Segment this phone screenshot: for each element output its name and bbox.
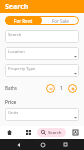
- button[interactable]: Decrease baths: [46, 84, 55, 93]
- staticText: Baths: [5, 85, 18, 91]
- staticText: Location: [8, 49, 25, 55]
- button[interactable]: For Rent: [5, 16, 42, 25]
- button[interactable]: For Sale: [42, 16, 79, 25]
- button[interactable]: Recents: [60, 139, 71, 150]
- staticText: Search: [8, 32, 22, 38]
- staticText: Units: [8, 110, 19, 116]
- button[interactable]: Increase baths: [68, 84, 77, 93]
- staticText: Property Type: [8, 66, 36, 72]
- button[interactable]: Search: [37, 128, 66, 137]
- staticText: For Sale: [52, 18, 69, 24]
- staticText: Search: [48, 130, 62, 136]
- button[interactable]: Browse: [19, 126, 37, 139]
- button[interactable]: Location: [5, 47, 79, 60]
- button[interactable]: Search: [5, 30, 79, 43]
- button[interactable]: Back: [13, 139, 24, 150]
- button[interactable]: Units: [5, 108, 79, 121]
- staticText: 1: [60, 85, 63, 91]
- button[interactable]: Home: [0, 126, 19, 139]
- button[interactable]: Property Type: [5, 64, 79, 77]
- staticText: Price: [5, 99, 17, 106]
- button[interactable]: Profile: [66, 126, 84, 139]
- button[interactable]: Home: [37, 139, 48, 150]
- staticText: Search: [5, 2, 29, 12]
- staticText: For Rent: [14, 18, 33, 24]
